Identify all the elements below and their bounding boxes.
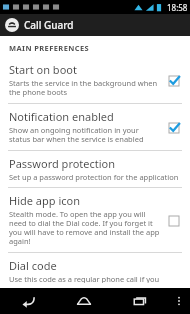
- button[interactable]: Recent apps: [112, 288, 168, 314]
- staticText: Hide app icon: [9, 193, 80, 208]
- other: Call Guard app icon: [5, 18, 19, 32]
- staticText: Stealth mode. To open the app you will n…: [9, 209, 161, 247]
- button[interactable]: Checked: [167, 74, 180, 87]
- button[interactable]: Password protection: [0, 151, 190, 187]
- staticText: Dial code: [9, 258, 57, 273]
- staticText: Password protection: [9, 156, 116, 171]
- staticText: Show an ongoing notification in your sta…: [9, 125, 161, 145]
- button[interactable]: Start on boot: [0, 57, 190, 103]
- staticText: Notification enabled: [9, 109, 114, 124]
- button[interactable]: Notification enabled: [0, 104, 190, 150]
- button[interactable]: Home: [56, 288, 112, 314]
- button[interactable]: More options: [168, 288, 190, 314]
- staticText: Use this code as a regular phone call if…: [9, 274, 184, 283]
- button[interactable]: Checked: [167, 121, 180, 134]
- staticText: Call Guard: [24, 18, 74, 32]
- button[interactable]: Back: [0, 288, 56, 314]
- button[interactable]: Hide app icon: [0, 188, 190, 252]
- staticText: Start on boot: [9, 62, 77, 77]
- staticText: Starts the service in the background whe…: [9, 78, 161, 98]
- staticText: MAIN PREFERENCES: [9, 43, 90, 53]
- button[interactable]: Dial code: [0, 253, 190, 288]
- button[interactable]: Call Guard app icon: [0, 14, 190, 36]
- staticText: Set up a password protection for the app…: [9, 172, 179, 182]
- staticText: 18:58: [167, 2, 188, 13]
- button[interactable]: Unchecked: [167, 214, 180, 227]
